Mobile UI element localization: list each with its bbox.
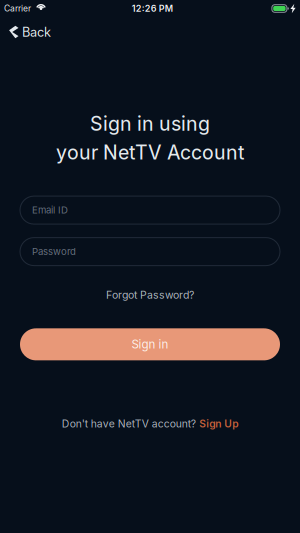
staticText: Back [22,24,51,40]
button[interactable]: Back [0,17,59,45]
staticText: your NetTV Account [56,141,244,164]
staticText: Email ID [32,204,68,216]
staticText: 12:26 PM [132,3,173,14]
staticText: Sign Up [199,417,238,430]
staticText: Password [32,246,76,257]
button[interactable]: Forgot Password? [98,285,202,305]
staticText: Forgot Password? [106,289,194,301]
staticText: Sign in [131,337,168,351]
staticText: Carrier [4,3,31,14]
button[interactable]: Sign Up [199,417,238,430]
button[interactable]: Sign in [20,328,280,360]
staticText: Don't have NetTV account? [62,417,196,430]
staticText: Sign in using [90,112,210,136]
